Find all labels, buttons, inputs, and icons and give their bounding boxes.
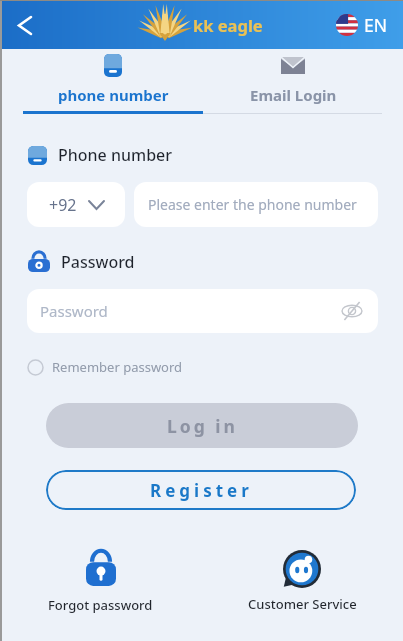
staticText: Remember password: [52, 358, 183, 376]
staticText: Register: [150, 479, 253, 502]
button[interactable]: EN: [336, 13, 388, 37]
staticText: Please enter the phone number: [148, 195, 357, 214]
button[interactable]: Please enter the phone number: [134, 182, 378, 227]
staticText: +92: [49, 194, 77, 216]
staticText: Customer Service: [248, 595, 357, 613]
button[interactable]: [10, 10, 40, 40]
staticText: Password: [40, 301, 108, 321]
button[interactable]: Email Login: [203, 54, 383, 105]
button[interactable]: Forgot password: [0, 550, 201, 614]
button[interactable]: Password: [27, 289, 378, 333]
staticText: Password: [61, 251, 135, 273]
button[interactable]: Customer Service: [201, 550, 403, 613]
button[interactable]: phone number: [23, 54, 203, 105]
staticText: phone number: [58, 85, 169, 105]
button[interactable]: +92: [27, 182, 125, 227]
staticText: Log in: [167, 414, 238, 438]
staticText: Forgot password: [48, 596, 153, 614]
staticText: Email Login: [250, 85, 337, 105]
button[interactable]: Remember password: [27, 358, 183, 376]
button[interactable]: Register: [46, 470, 356, 510]
staticText: kk eagle: [193, 14, 263, 36]
button[interactable]: Log in: [46, 403, 358, 448]
staticText: EN: [364, 13, 388, 37]
staticText: Phone number: [58, 144, 173, 166]
